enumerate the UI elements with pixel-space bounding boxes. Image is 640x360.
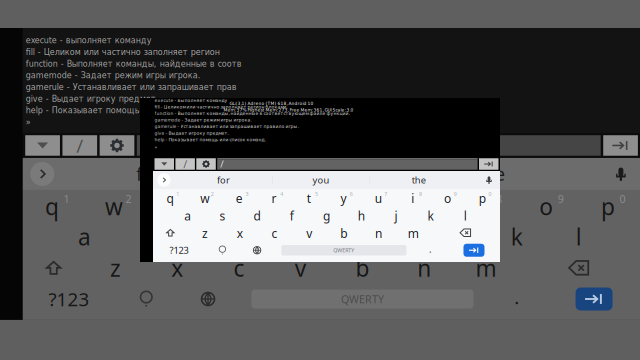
- button[interactable]: i: [396, 189, 431, 206]
- button[interactable]: s: [205, 206, 240, 224]
- button[interactable]: you: [273, 171, 370, 189]
- staticText: x: [171, 253, 183, 283]
- staticText: ?123: [49, 287, 90, 311]
- staticText: »: [26, 117, 31, 127]
- button[interactable]: Send message: [479, 158, 498, 170]
- button[interactable]: p: [465, 189, 500, 206]
- staticText: i: [411, 190, 414, 206]
- button[interactable]: x: [222, 224, 257, 241]
- staticText: 0: [488, 190, 491, 197]
- staticText: Mem: 37% Highest Mem: 273, Free Mem: 361…: [223, 107, 353, 113]
- staticText: z: [110, 253, 121, 283]
- button[interactable]: c: [257, 224, 292, 241]
- button[interactable]: l: [448, 206, 483, 224]
- button[interactable]: Shift: [153, 224, 188, 241]
- staticText: y: [340, 190, 346, 206]
- staticText: Задает режим игры игрока.: [184, 117, 251, 123]
- button[interactable]: o: [431, 189, 465, 206]
- button[interactable]: a: [170, 206, 205, 224]
- button[interactable]: Change keyboard: [240, 241, 274, 259]
- staticText: 4: [280, 190, 283, 197]
- staticText: d: [201, 222, 215, 252]
- button[interactable]: f: [274, 206, 309, 224]
- staticText: n: [375, 225, 382, 241]
- button[interactable]: Space: [274, 241, 413, 259]
- button[interactable]: v: [292, 224, 326, 241]
- button[interactable]: w: [188, 189, 222, 206]
- staticText: v: [306, 225, 312, 241]
- staticText: o: [444, 190, 451, 206]
- staticText: QWERTY: [341, 292, 384, 306]
- staticText: b: [340, 225, 347, 241]
- staticText: z: [202, 225, 208, 241]
- button[interactable]: Hide chat: [154, 158, 174, 170]
- button[interactable]: r: [257, 189, 292, 206]
- staticText: e: [236, 190, 243, 206]
- staticText: Устанавливает или запрашивает правило иг…: [180, 124, 298, 129]
- button[interactable]: u: [361, 189, 396, 206]
- staticText: 6: [350, 190, 353, 197]
- button[interactable]: m: [396, 224, 431, 241]
- staticText: n: [417, 253, 431, 283]
- button[interactable]: .: [413, 241, 448, 259]
- staticText: ?123: [169, 244, 188, 256]
- staticText: execute - выполняет команду: [26, 36, 152, 45]
- button[interactable]: ?123: [153, 241, 205, 259]
- button[interactable]: for: [175, 171, 272, 189]
- button[interactable]: Voice typing: [478, 171, 500, 189]
- staticText: you: [305, 162, 335, 185]
- button[interactable]: j: [379, 206, 413, 224]
- button[interactable]: More suggestions: [153, 171, 175, 189]
- button[interactable]: t: [292, 189, 326, 206]
- button[interactable]: Slash commands: [175, 158, 195, 170]
- staticText: Выполняет команды, найденные в соответст…: [177, 111, 349, 116]
- staticText: gamemode - Задает режим игры игрока.: [26, 71, 201, 80]
- staticText: .: [429, 243, 432, 255]
- button[interactable]: n: [361, 224, 396, 241]
- staticText: w: [200, 190, 209, 206]
- staticText: function -: [154, 111, 177, 116]
- button[interactable]: Chat settings: [196, 158, 216, 170]
- staticText: 8: [496, 192, 502, 206]
- staticText: the: [412, 174, 426, 186]
- button[interactable]: Enter: [448, 241, 500, 259]
- staticText: f: [290, 208, 294, 224]
- staticText: you: [313, 174, 330, 186]
- button[interactable]: g: [309, 206, 344, 224]
- button[interactable]: h: [344, 206, 379, 224]
- staticText: for: [136, 162, 159, 185]
- staticText: fill - Целиком или частично заполняет ре…: [26, 48, 220, 57]
- staticText: l: [576, 222, 582, 252]
- staticText: execute -: [154, 98, 177, 103]
- staticText: QWERTY: [333, 247, 354, 254]
- staticText: gamerule -: [154, 124, 180, 129]
- button[interactable]: d: [240, 206, 274, 224]
- button[interactable]: e: [222, 189, 257, 206]
- button[interactable]: Emoji: [205, 241, 240, 259]
- staticText: 1: [64, 192, 70, 206]
- staticText: 2: [125, 192, 131, 206]
- staticText: r: [272, 190, 277, 206]
- button[interactable]: z: [188, 224, 222, 241]
- staticText: a: [184, 208, 191, 224]
- button[interactable]: k: [413, 206, 448, 224]
- staticText: a: [78, 222, 91, 252]
- button[interactable]: y: [326, 189, 361, 206]
- staticText: r: [233, 191, 242, 222]
- button[interactable]: the: [370, 171, 467, 189]
- button[interactable]: b: [326, 224, 361, 241]
- staticText: g: [325, 222, 339, 252]
- button[interactable]: Backspace: [431, 224, 500, 241]
- staticText: help -: [154, 137, 168, 142]
- staticText: t: [307, 190, 311, 206]
- staticText: c: [233, 253, 244, 283]
- staticText: b: [355, 253, 369, 283]
- button[interactable]: q: [153, 189, 188, 206]
- staticText: »: [154, 144, 157, 150]
- staticText: function - Выполняет команды, найденные …: [26, 59, 242, 68]
- staticText: j: [394, 208, 397, 224]
